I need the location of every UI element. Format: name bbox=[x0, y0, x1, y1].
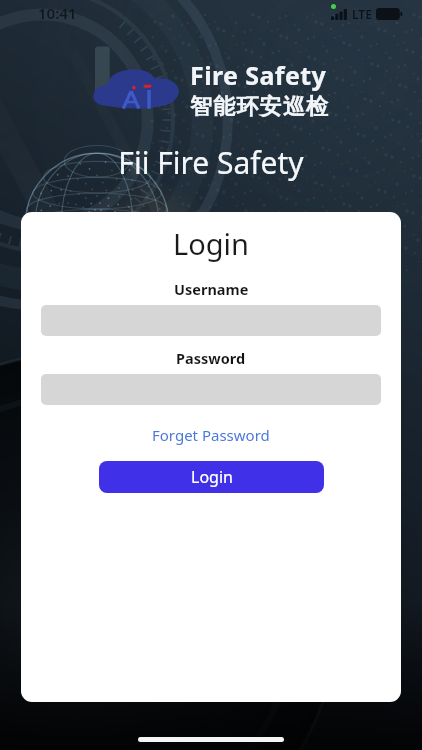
button[interactable]: Forget Password bbox=[146, 423, 276, 447]
staticText: LTE bbox=[352, 6, 372, 22]
staticText: Forget Password bbox=[152, 425, 270, 445]
staticText: Username bbox=[174, 279, 249, 299]
staticText: Fii Fire Safety bbox=[118, 142, 304, 183]
staticText: Password bbox=[176, 348, 246, 368]
staticText: Login bbox=[191, 466, 233, 488]
staticText: 智能环安巡检 bbox=[190, 93, 330, 121]
staticText: 10:41 bbox=[38, 3, 77, 23]
button[interactable]: Login bbox=[99, 461, 324, 493]
staticText: Fire Safety bbox=[190, 58, 327, 92]
staticText: Login bbox=[173, 224, 249, 263]
